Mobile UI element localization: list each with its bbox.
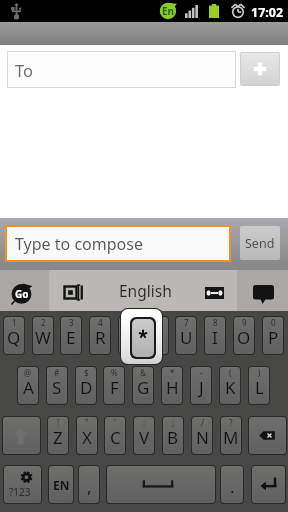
staticText: I: [212, 326, 218, 349]
staticText: 1: [12, 317, 17, 328]
button[interactable]: ": [77, 417, 97, 454]
button[interactable]: EN: [49, 466, 73, 503]
button[interactable]: 6: [148, 317, 168, 354]
button[interactable]: $: [76, 367, 96, 404]
staticText: D: [80, 376, 93, 399]
staticText: Type to compose: [15, 233, 143, 255]
button[interactable]: %: [104, 367, 124, 404]
button[interactable]: :: [134, 417, 154, 454]
staticText: C: [110, 426, 121, 449]
staticText: U: [180, 326, 193, 349]
button[interactable]: 0: [263, 317, 283, 354]
staticText: Z: [53, 426, 63, 449]
staticText: X: [82, 426, 92, 449]
staticText: M: [223, 426, 239, 449]
staticText: (: [229, 367, 232, 378]
staticText: ;: [172, 417, 175, 428]
staticText: B: [167, 426, 179, 449]
button[interactable]: !: [48, 417, 68, 454]
staticText: .: [230, 475, 235, 498]
button[interactable]: -: [191, 367, 211, 404]
button[interactable]: Enter: [252, 466, 285, 503]
staticText: English: [119, 280, 172, 301]
button[interactable]: Keyboard menu: [11, 283, 32, 304]
button[interactable]: ': [105, 417, 125, 454]
staticText: ?123: [9, 485, 31, 499]
button[interactable]: /: [192, 417, 212, 454]
button[interactable]: ): [249, 367, 269, 404]
staticText: ,: [87, 475, 92, 498]
button[interactable]: &: [133, 367, 153, 404]
staticText: Send: [245, 235, 275, 252]
button[interactable]: @: [18, 367, 38, 404]
button[interactable]: 7: [176, 317, 196, 354]
staticText: Go: [15, 287, 29, 301]
staticText: $: [84, 367, 89, 378]
button[interactable]: ?: [221, 417, 241, 454]
staticText: O: [237, 326, 251, 349]
staticText: N: [196, 426, 209, 449]
staticText: 2: [41, 317, 46, 328]
button[interactable]: 8: [205, 317, 225, 354]
button[interactable]: 3: [61, 317, 81, 354]
button[interactable]: Emoji: [253, 284, 274, 304]
staticText: En: [162, 4, 175, 18]
button[interactable]: #: [47, 367, 67, 404]
staticText: J: [199, 376, 204, 399]
button[interactable]: Backspace: [249, 417, 286, 454]
staticText: 5: [127, 317, 132, 328]
staticText: *: [170, 367, 175, 378]
staticText: 3: [69, 317, 74, 328]
button[interactable]: .: [221, 466, 243, 503]
staticText: !: [57, 417, 60, 428]
button[interactable]: Type to compose: [7, 227, 229, 260]
staticText: A: [23, 376, 34, 399]
staticText: E: [66, 326, 76, 349]
button[interactable]: Add recipient: [241, 53, 279, 85]
staticText: K: [225, 376, 236, 399]
button[interactable]: 9: [234, 317, 254, 354]
staticText: P: [268, 326, 279, 349]
button[interactable]: Edit text: [64, 286, 84, 300]
staticText: F: [110, 376, 119, 399]
staticText: 9: [242, 317, 247, 328]
staticText: EN: [53, 477, 70, 493]
staticText: #: [54, 367, 60, 378]
staticText: ?: [229, 417, 233, 428]
staticText: 7: [184, 317, 189, 328]
button[interactable]: ,: [79, 466, 99, 503]
button[interactable]: (: [220, 367, 240, 404]
staticText: T: [124, 326, 134, 349]
staticText: H: [166, 376, 179, 399]
button[interactable]: To: [8, 52, 235, 87]
staticText: S: [52, 376, 62, 399]
button[interactable]: Send: [240, 226, 280, 260]
staticText: @: [24, 367, 32, 378]
staticText: ): [258, 367, 261, 378]
staticText: W: [35, 326, 51, 349]
staticText: Y: [153, 326, 163, 349]
button[interactable]: Keyboard layout: [205, 287, 224, 299]
button[interactable]: Space: [107, 466, 215, 503]
button[interactable]: 4: [90, 317, 110, 354]
button[interactable]: 5: [119, 317, 139, 354]
button[interactable]: 1: [4, 317, 24, 354]
button[interactable]: ;: [163, 417, 183, 454]
staticText: Q: [7, 326, 21, 349]
staticText: To: [15, 59, 34, 81]
staticText: 17:02: [251, 4, 284, 21]
staticText: 8: [213, 317, 218, 328]
staticText: R: [95, 326, 106, 349]
staticText: ': [114, 417, 116, 428]
button[interactable]: Shift: [3, 417, 40, 454]
button[interactable]: *: [162, 367, 182, 404]
button[interactable]: 2: [33, 317, 53, 354]
staticText: G: [137, 376, 150, 399]
staticText: &: [140, 367, 146, 378]
staticText: /: [201, 417, 204, 428]
staticText: L: [255, 376, 264, 399]
staticText: 0: [271, 317, 276, 328]
staticText: %: [111, 367, 118, 378]
button[interactable]: Symbols: [4, 466, 41, 503]
